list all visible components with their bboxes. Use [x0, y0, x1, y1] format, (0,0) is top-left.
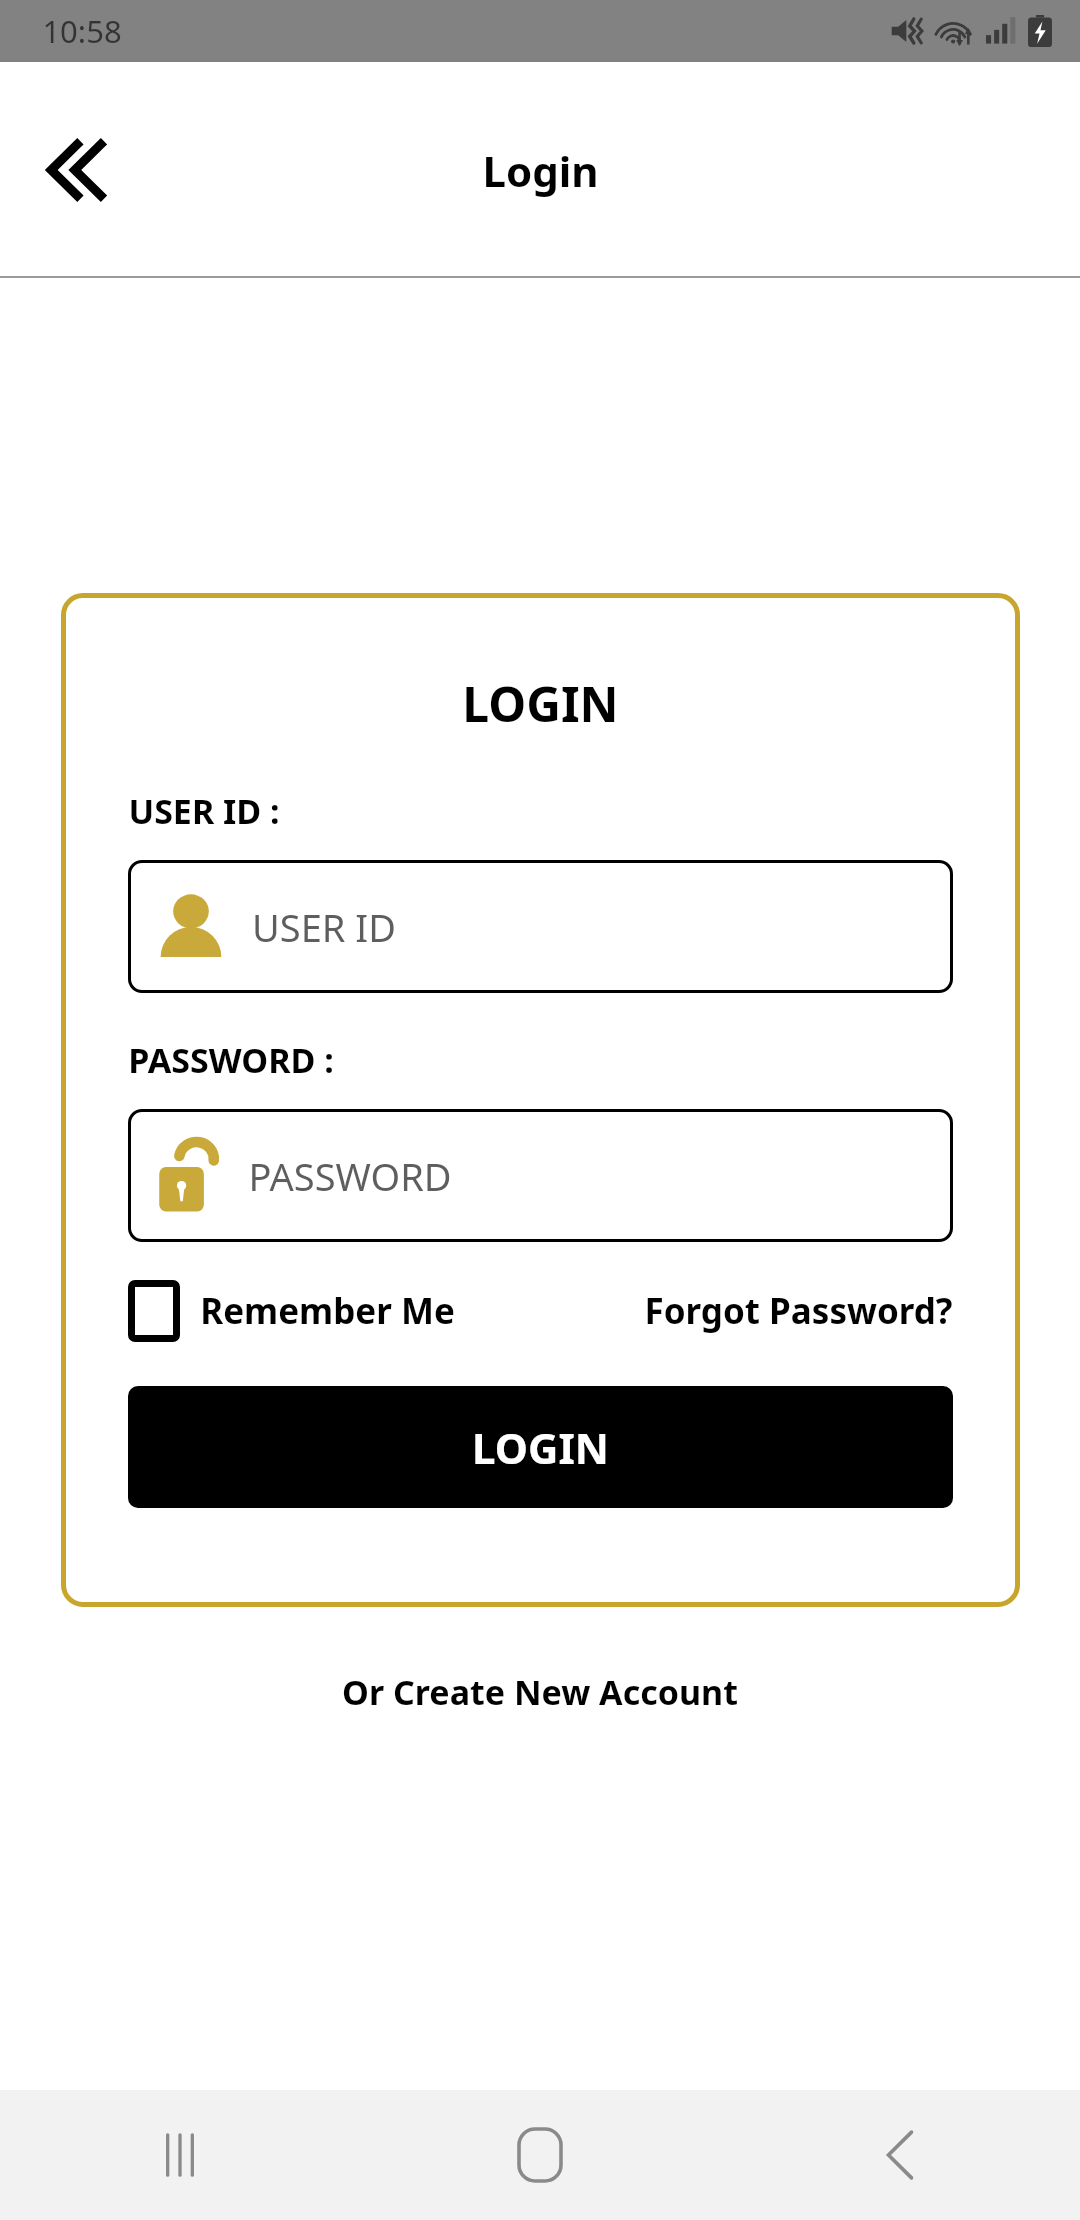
button[interactable]: Or Create New Account [342, 1669, 738, 1715]
staticText: USER ID [252, 901, 396, 953]
button[interactable]: Recents [0, 2090, 360, 2220]
staticText: Login [482, 142, 599, 199]
staticText: USER ID : [128, 788, 280, 834]
staticText: LOGIN [462, 671, 619, 736]
staticText: PASSWORD : [128, 1037, 334, 1083]
button[interactable]: Remember Me [128, 1280, 455, 1342]
staticText: PASSWORD [248, 1150, 452, 1202]
button[interactable]: Home [360, 2090, 720, 2220]
staticText: LOGIN [472, 1419, 609, 1476]
button[interactable]: LOGIN [128, 1386, 953, 1508]
button[interactable]: Back [28, 122, 124, 218]
button[interactable]: PASSWORD [128, 1109, 953, 1242]
button[interactable]: Back [720, 2090, 1080, 2220]
staticText: 10:58 [42, 10, 122, 52]
button[interactable]: USER ID [128, 860, 953, 993]
button[interactable]: Forgot Password? [644, 1287, 953, 1335]
staticText: Remember Me [200, 1287, 455, 1335]
